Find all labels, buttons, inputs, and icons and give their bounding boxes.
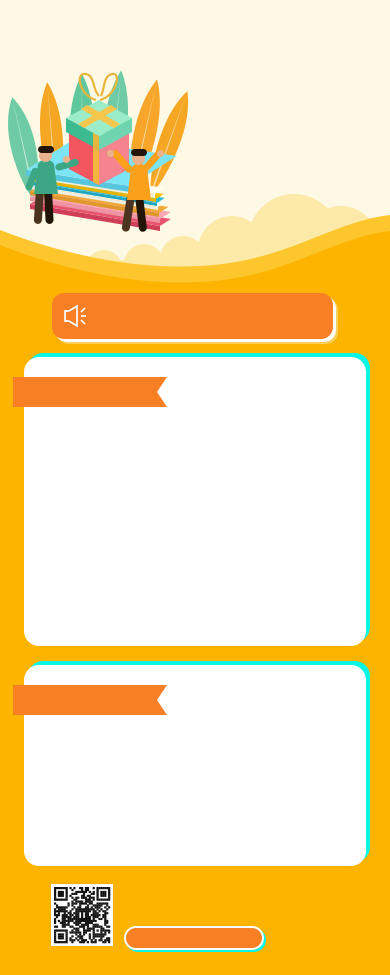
button[interactable]: Action xyxy=(124,926,266,952)
button[interactable]: Announcement xyxy=(52,293,339,345)
